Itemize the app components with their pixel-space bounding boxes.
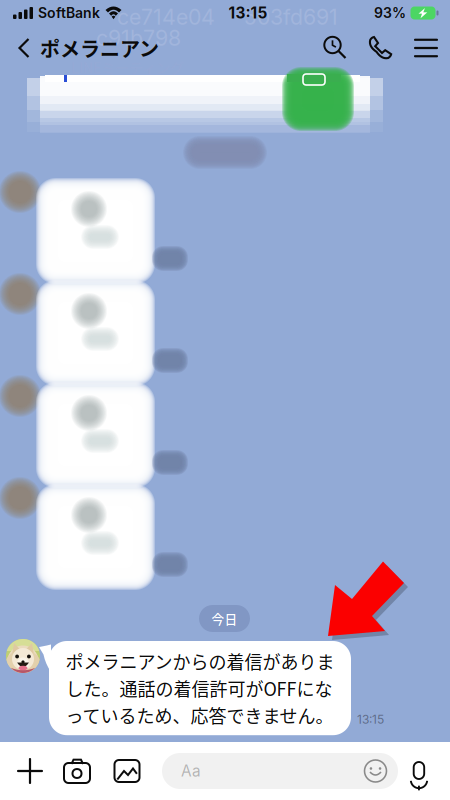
staticText: SoftBank: [38, 4, 100, 21]
staticText: ポメラニアン: [40, 33, 159, 62]
button[interactable]: Voice message: [400, 742, 438, 800]
button[interactable]: Call: [358, 26, 402, 70]
staticText: LINEミーティング: [71, 57, 184, 77]
button[interactable]: Add attachment: [8, 742, 52, 800]
button[interactable]: Back: [0, 26, 40, 70]
button[interactable]: Aa: [162, 753, 398, 789]
staticText: ce714e04: [117, 4, 215, 30]
button[interactable]: Search chat history: [312, 26, 358, 70]
staticText: 13:15: [357, 712, 384, 726]
button[interactable]: Camera: [55, 742, 99, 800]
staticText: c91b798: [96, 25, 181, 51]
staticText: 13:15: [228, 4, 267, 22]
button[interactable]: Menu: [402, 26, 450, 70]
staticText: 今日: [211, 609, 237, 628]
staticText: 503fd691: [244, 4, 338, 30]
button[interactable]: Photos: [105, 742, 149, 800]
staticText: Aa: [181, 762, 201, 780]
staticText: 93%: [374, 4, 406, 21]
staticText: ポメラニアンからの着信がありま した。通話の着信許可がOFFにな っているため、…: [65, 648, 334, 728]
